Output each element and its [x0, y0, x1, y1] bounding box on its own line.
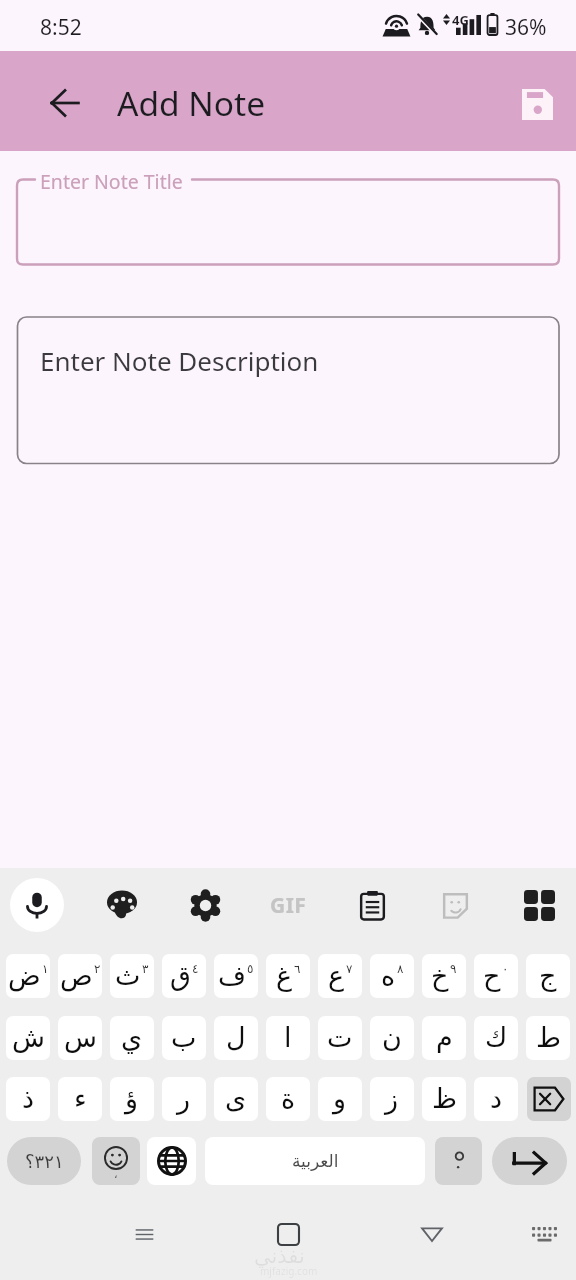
staticText: Enter Note Description: [40, 343, 319, 378]
staticText: ع: [328, 960, 345, 991]
staticText: ص: [60, 960, 93, 991]
button[interactable]: Clipboard: [345, 878, 399, 932]
staticText: ر: [177, 1083, 191, 1114]
staticText: ٢: [94, 962, 101, 976]
button[interactable]: Enter: [492, 1137, 567, 1185]
staticText: ٣: [142, 962, 149, 976]
button[interactable]: Recents: [116, 1206, 172, 1262]
staticText: 4G: [452, 11, 469, 29]
staticText: ش: [12, 1022, 45, 1053]
button[interactable]: Backspace: [527, 1077, 571, 1121]
button[interactable]: Voice input: [10, 878, 64, 932]
button[interactable]: ف: [214, 954, 258, 998]
button[interactable]: Enter Note Description: [17, 317, 559, 464]
staticText: 36%: [505, 13, 547, 42]
staticText: ذ: [22, 1083, 35, 1114]
button[interactable]: [435, 1137, 482, 1185]
button[interactable]: ي: [110, 1016, 154, 1060]
staticText: ٨: [397, 962, 404, 976]
button[interactable]: GIF: [261, 878, 315, 932]
button[interactable]: ت: [318, 1016, 362, 1060]
staticText: ٥: [247, 962, 254, 976]
button[interactable]: Change language: [147, 1137, 196, 1185]
staticText: ل: [226, 1022, 246, 1053]
staticText: ى: [225, 1083, 247, 1114]
button[interactable]: Back: [44, 82, 86, 124]
staticText: ٦: [294, 962, 301, 976]
button[interactable]: ط: [526, 1016, 570, 1060]
staticText: ‭؟٣٢١‬: [25, 1149, 64, 1174]
button[interactable]: ز: [370, 1077, 414, 1121]
button[interactable]: Back: [404, 1206, 460, 1262]
button[interactable]: Settings: [178, 878, 232, 932]
button[interactable]: ج: [526, 954, 570, 998]
staticText: ٠: [502, 962, 509, 976]
staticText: نفذني: [254, 1244, 305, 1268]
button[interactable]: Home: [260, 1206, 316, 1262]
button[interactable]: ص: [58, 954, 102, 998]
staticText: ض: [8, 960, 41, 991]
staticText: س: [64, 1022, 97, 1053]
button[interactable]: ء: [58, 1077, 102, 1121]
staticText: و: [333, 1083, 347, 1114]
staticText: ب: [171, 1022, 197, 1053]
staticText: ن: [382, 1022, 402, 1053]
button[interactable]: ض: [6, 954, 50, 998]
staticText: ١: [42, 962, 49, 976]
button[interactable]: ه: [370, 954, 414, 998]
staticText: ٤: [192, 962, 199, 976]
staticText: ج: [539, 960, 557, 991]
button[interactable]: ن: [370, 1016, 414, 1060]
button[interactable]: ك: [474, 1016, 518, 1060]
staticText: ق: [170, 960, 191, 991]
button[interactable]: Hide keyboard: [516, 1206, 572, 1262]
button[interactable]: غ: [266, 954, 310, 998]
button[interactable]: Themes: [95, 878, 149, 932]
button[interactable]: ب: [162, 1016, 206, 1060]
button[interactable]: العربية: [205, 1137, 425, 1185]
button[interactable]: س: [58, 1016, 102, 1060]
button[interactable]: ق: [162, 954, 206, 998]
button[interactable]: ظ: [422, 1077, 466, 1121]
button[interactable]: ل: [214, 1016, 258, 1060]
button[interactable]: ش: [6, 1016, 50, 1060]
button[interactable]: ث: [110, 954, 154, 998]
button[interactable]: ح: [474, 954, 518, 998]
staticText: ا: [284, 1022, 292, 1053]
button[interactable]: ذ: [6, 1077, 50, 1121]
button[interactable]: و: [318, 1077, 362, 1121]
button[interactable]: ر: [162, 1077, 206, 1121]
staticText: ه: [381, 960, 396, 991]
button[interactable]: More: [512, 878, 566, 932]
staticText: GIF: [270, 891, 307, 920]
staticText: ؤ: [125, 1083, 139, 1114]
staticText: ف: [218, 960, 246, 991]
staticText: ز: [385, 1083, 399, 1114]
button[interactable]: ع: [318, 954, 362, 998]
button[interactable]: ة: [266, 1077, 310, 1121]
staticText: Enter Note Title: [40, 168, 183, 195]
button[interactable]: Stickers: [428, 878, 482, 932]
staticText: ٧: [346, 962, 353, 976]
button[interactable]: Save: [512, 79, 562, 129]
button[interactable]: ا: [266, 1016, 310, 1060]
button[interactable]: ‭؟٣٢١‬: [7, 1137, 81, 1185]
staticText: Add Note: [117, 80, 266, 126]
button[interactable]: Emoji: [92, 1137, 140, 1185]
button[interactable]: م: [422, 1016, 466, 1060]
button[interactable]: ى: [214, 1077, 258, 1121]
staticText: ح: [483, 960, 501, 991]
button[interactable]: خ: [422, 954, 466, 998]
staticText: غ: [276, 960, 293, 991]
staticText: ٩: [450, 962, 457, 976]
staticText: ء: [74, 1083, 87, 1114]
button[interactable]: ؤ: [110, 1077, 154, 1121]
staticText: ي: [121, 1022, 143, 1053]
button[interactable]: د: [474, 1077, 518, 1121]
staticText: ظ: [432, 1083, 457, 1114]
staticText: د: [490, 1083, 503, 1114]
button[interactable]: [17, 179, 559, 265]
staticText: ث: [115, 960, 141, 991]
staticText: ،: [114, 1168, 118, 1181]
staticText: ط: [536, 1022, 561, 1053]
